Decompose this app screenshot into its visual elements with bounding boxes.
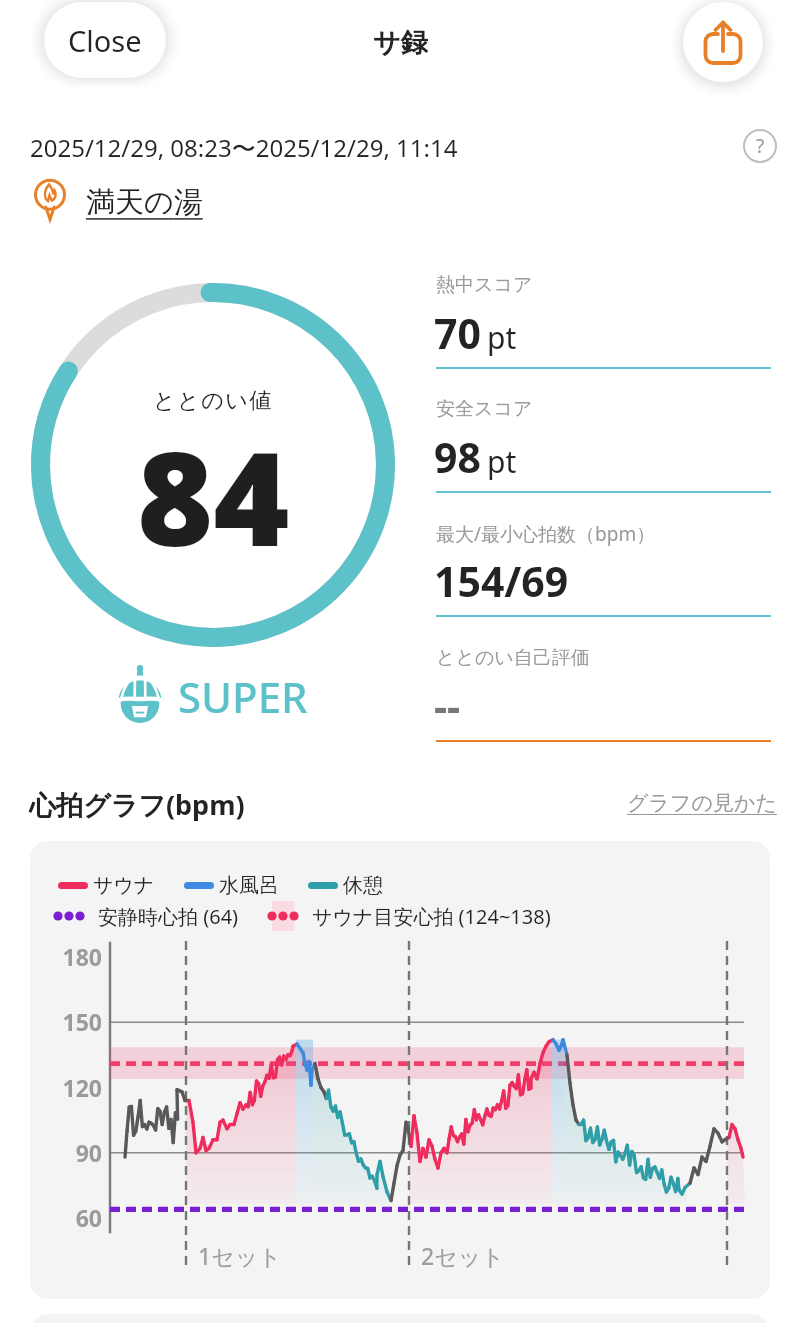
staticText: 満天の湯 (86, 184, 203, 221)
staticText: ととのい値 (153, 387, 274, 415)
staticText: SUPER (178, 668, 308, 725)
staticText: pt (487, 317, 517, 358)
staticText: 心拍グラフ(bpm) (29, 786, 245, 823)
staticText: 84 (137, 407, 290, 584)
staticText: Close (68, 21, 142, 60)
staticText: 90 (75, 1137, 102, 1168)
staticText: ととのい自己評価 (436, 646, 590, 670)
staticText: サウナ目安心拍 (124~138) (312, 903, 551, 930)
staticText: 安全スコア (436, 397, 533, 421)
button[interactable]: グラフの見かた (627, 790, 777, 816)
staticText: 最大/最小心拍数（bpm） (436, 521, 656, 547)
staticText: サ録 (373, 26, 428, 60)
staticText: 1セット (198, 1240, 282, 1271)
staticText: 休憩 (343, 873, 383, 898)
staticText: 熱中スコア (436, 273, 533, 297)
staticText: 70 (434, 305, 481, 361)
staticText: 安静時心拍 (64) (98, 903, 239, 930)
button[interactable]: Close (44, 2, 166, 78)
staticText: 98 (434, 429, 481, 485)
staticText: サウナ (93, 873, 155, 898)
staticText: 2025/12/29, 08:23〜2025/12/29, 11:14 (30, 131, 458, 164)
staticText: 154/69 (434, 553, 569, 609)
staticText: 水風呂 (219, 873, 279, 898)
staticText: 60 (75, 1202, 102, 1233)
button[interactable]: Share (683, 2, 763, 82)
staticText: グラフの見かた (627, 790, 777, 816)
button[interactable]: Help (738, 124, 782, 168)
staticText: 120 (62, 1072, 102, 1103)
staticText: 2セット (421, 1240, 505, 1271)
staticText: ? (756, 133, 765, 159)
staticText: pt (487, 441, 517, 482)
staticText: 150 (62, 1006, 102, 1037)
staticText: -- (434, 678, 461, 734)
staticText: 180 (62, 941, 102, 972)
